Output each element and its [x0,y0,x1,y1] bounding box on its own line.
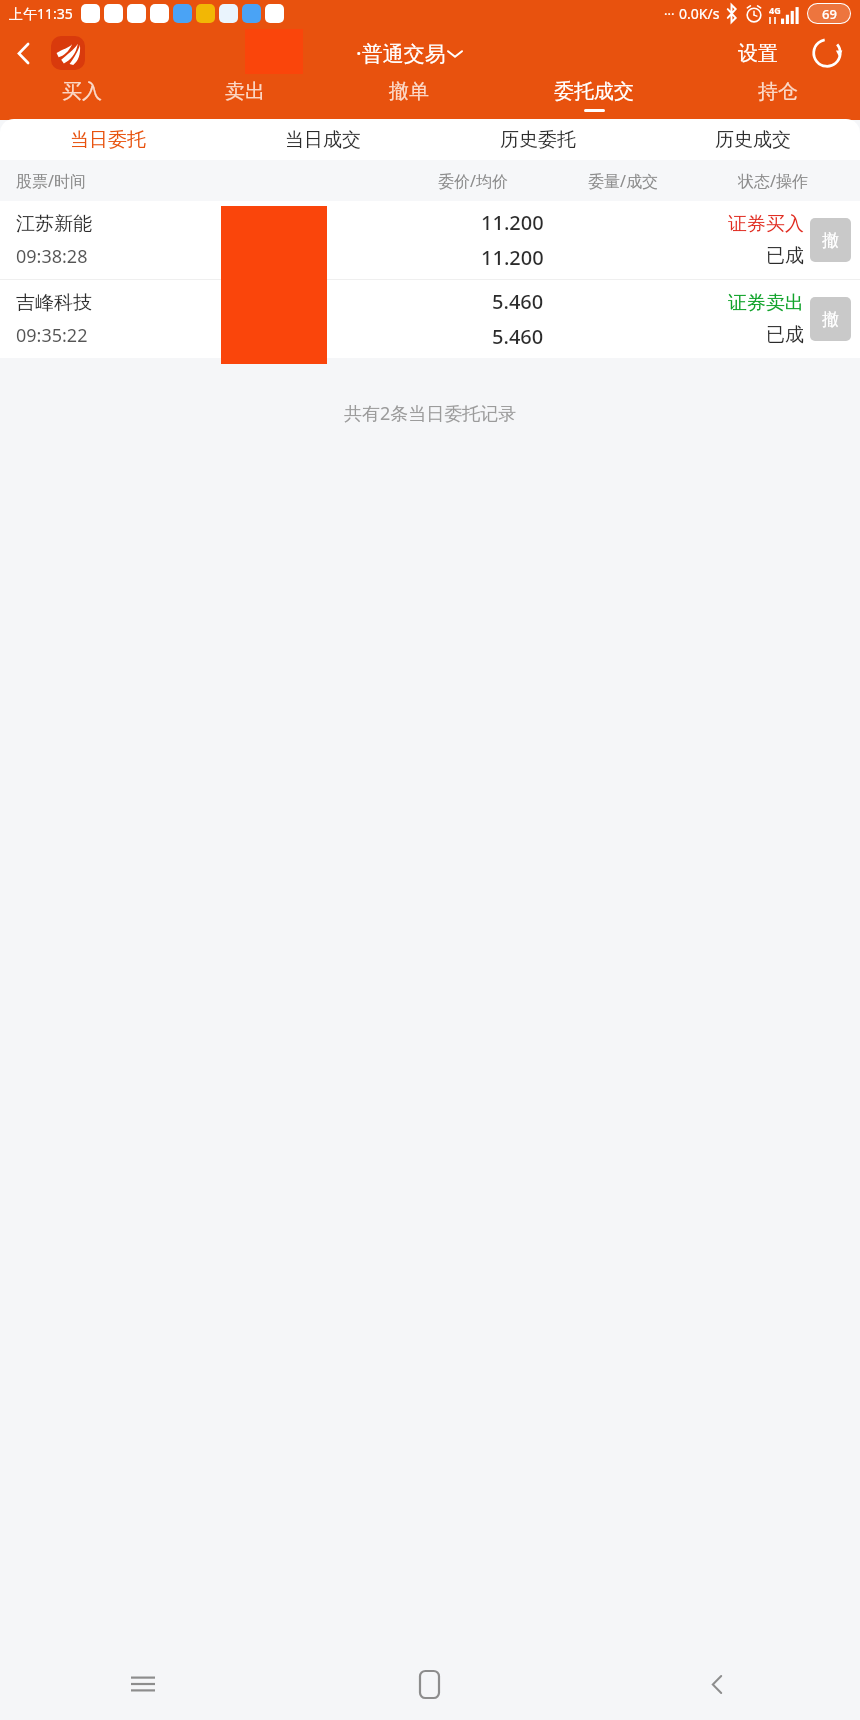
button[interactable]: Back [0,27,46,79]
staticText: 当日委托 [70,128,146,152]
button[interactable]: Recent apps [0,1648,286,1720]
button[interactable]: 委托成交 [491,79,696,120]
staticText: 0.0K/s [679,4,720,23]
button[interactable]: 吉峰科技 [0,280,860,358]
staticText: 证券卖出 [728,291,804,315]
staticText: 已成 [766,323,804,347]
button[interactable]: Home [286,1648,573,1720]
button[interactable]: 历史成交 [645,119,860,160]
staticText: 历史成交 [715,128,791,152]
staticText: 5.460 [492,323,544,350]
staticText: 69 [822,5,837,23]
button[interactable]: ·普通交易 [356,39,462,68]
staticText: 已成 [766,244,804,268]
staticText: 4G [769,4,781,16]
staticText: 委量/成交 [548,170,698,192]
staticText: 江苏新能 [16,212,92,236]
staticText: 卖出 [225,79,265,104]
staticText: 委托成交 [554,79,634,104]
staticText: 买入 [62,79,102,104]
button[interactable]: App logo [46,27,90,79]
button[interactable]: 江苏新能 [0,201,860,279]
button[interactable]: Back [573,1648,860,1720]
button[interactable]: 撤 [810,218,851,262]
button[interactable]: 卖出 [163,79,327,120]
staticText: ··· [664,5,675,23]
staticText: 证券买入 [728,212,804,236]
button[interactable]: Refresh [804,27,850,79]
staticText: 09:35:22 [16,323,88,348]
staticText: 09:38:28 [16,244,88,269]
staticText: 持仓 [758,79,798,104]
button[interactable]: 撤单 [327,79,491,120]
button[interactable]: 设置 [738,27,778,79]
staticText: 撤 [822,309,839,330]
staticText: 股票/时间 [16,170,146,192]
staticText: 设置 [738,41,778,66]
staticText: 5.460 [492,288,544,315]
staticText: 撤单 [389,79,429,104]
staticText: 委价/均价 [398,170,548,192]
button[interactable]: 历史委托 [430,119,645,160]
staticText: 11.200 [481,244,544,271]
button[interactable]: 买入 [0,79,163,120]
button[interactable]: 当日委托 [0,119,215,160]
staticText: 上午11:35 [9,4,73,23]
button[interactable]: 当日成交 [215,119,430,160]
staticText: 11.200 [481,209,544,236]
staticText: ·普通交易 [356,39,446,68]
staticText: 吉峰科技 [16,291,92,315]
staticText: 当日成交 [285,128,361,152]
staticText: 共有2条当日委托记录 [344,401,517,426]
staticText: 历史委托 [500,128,576,152]
staticText: 撤 [822,230,839,251]
staticText: 状态/操作 [698,170,848,192]
button[interactable]: 撤 [810,297,851,341]
button[interactable]: 持仓 [696,79,860,120]
